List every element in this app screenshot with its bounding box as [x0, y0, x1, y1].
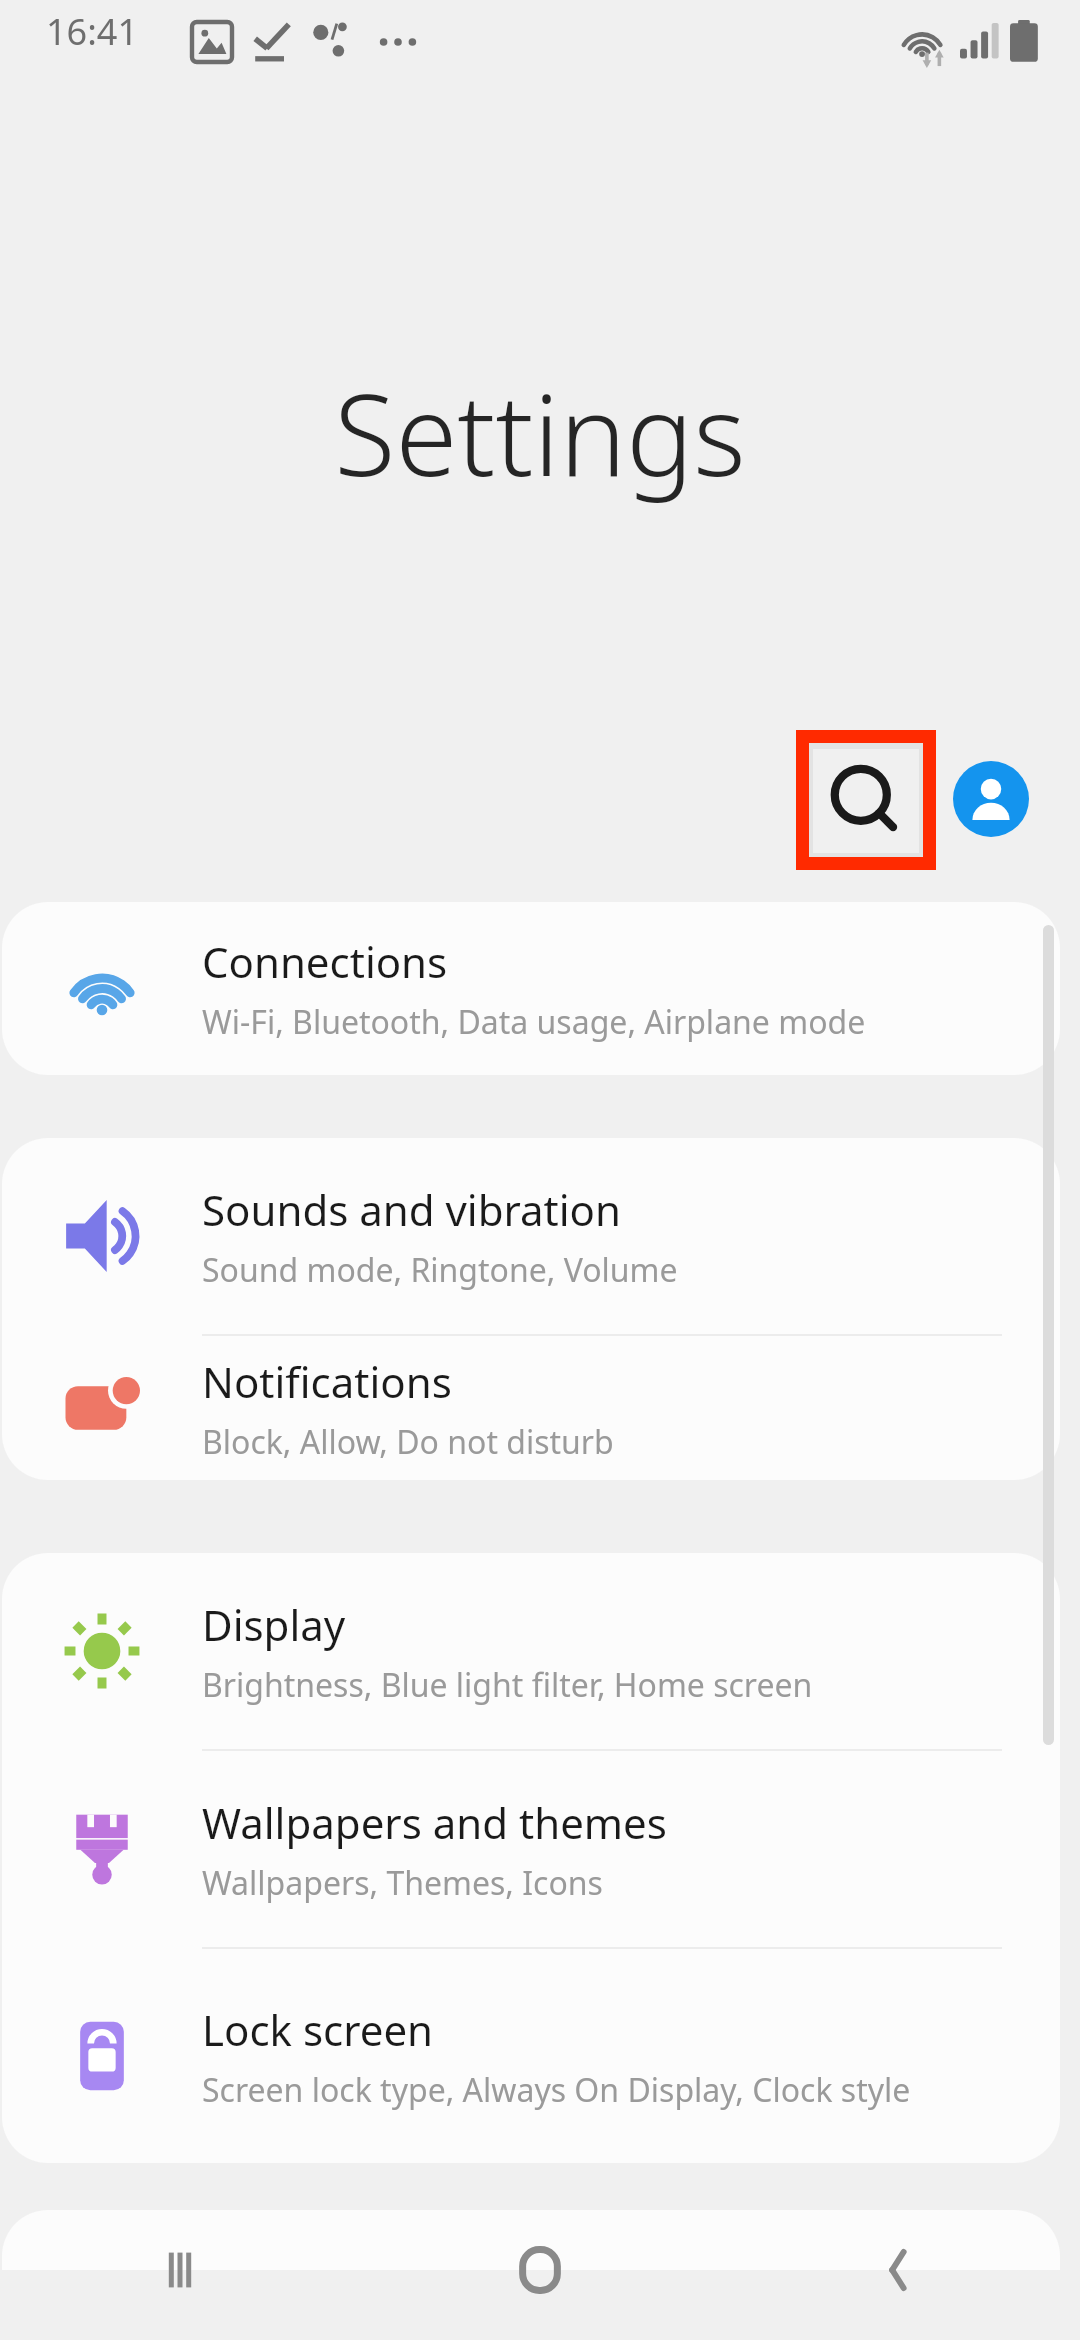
- staticText: Lock screen: [202, 2001, 434, 2058]
- button[interactable]: Back: [720, 2200, 1080, 2340]
- button[interactable]: Search settings: [796, 730, 936, 870]
- button[interactable]: Display: [2, 1553, 1060, 1749]
- button[interactable]: Notifications: [2, 1336, 1060, 1480]
- staticText: Brightness, Blue light filter, Home scre…: [202, 1663, 813, 1707]
- staticText: Block, Allow, Do not disturb: [202, 1420, 614, 1464]
- staticText: Screen lock type, Always On Display, Clo…: [202, 2068, 911, 2112]
- button[interactable]: Sounds and vibration: [2, 1138, 1060, 1334]
- staticText: Settings: [0, 356, 1080, 509]
- button[interactable]: Connections: [2, 902, 1060, 1075]
- button[interactable]: Samsung account profile: [953, 761, 1029, 837]
- staticText: Connections: [202, 933, 448, 990]
- staticText: Notifications: [202, 1353, 452, 1410]
- staticText: 16:41: [46, 7, 139, 56]
- button[interactable]: Wallpapers and themes: [2, 1751, 1060, 1947]
- staticText: Display: [202, 1596, 346, 1653]
- button[interactable]: [2, 2210, 1060, 2270]
- staticText: Sound mode, Ringtone, Volume: [202, 1248, 678, 1292]
- staticText: Wallpapers and themes: [202, 1794, 667, 1851]
- button[interactable]: Home: [360, 2200, 720, 2340]
- staticText: Wallpapers, Themes, Icons: [202, 1861, 603, 1905]
- staticText: Sounds and vibration: [202, 1181, 621, 1238]
- button[interactable]: Lock screen: [2, 1949, 1060, 2163]
- button[interactable]: Recent apps: [0, 2200, 360, 2340]
- staticText: Wi-Fi, Bluetooth, Data usage, Airplane m…: [202, 1000, 866, 1044]
